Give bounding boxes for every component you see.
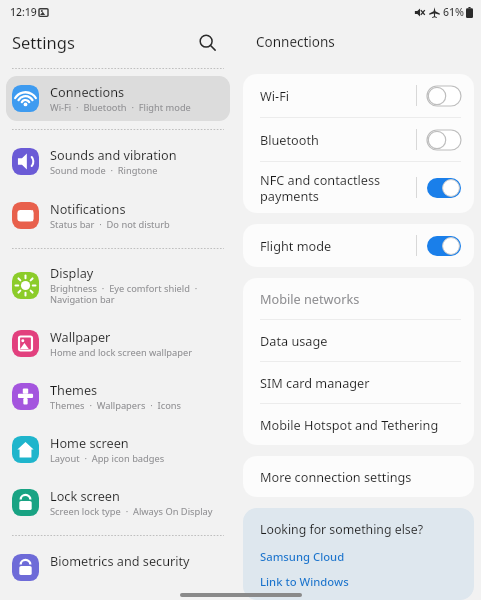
- button[interactable]: Mobile networks: [243, 278, 474, 319]
- staticText: Home screen: [50, 434, 129, 451]
- staticText: Display: [50, 264, 94, 281]
- staticText: NFC and contactless payments: [260, 171, 408, 204]
- staticText: Brightness · Eye comfort shield · Naviga…: [50, 282, 198, 306]
- button[interactable]: Flight mode: [243, 224, 474, 267]
- button[interactable]: Mobile Hotspot and Tethering: [243, 404, 474, 445]
- staticText: Themes: [50, 381, 98, 398]
- staticText: Connections: [50, 83, 125, 100]
- staticText: SIM card manager: [260, 374, 370, 391]
- button[interactable]: Biometrics and security: [6, 545, 230, 590]
- staticText: Home and lock screen wallpaper: [50, 346, 193, 359]
- staticText: Sounds and vibration: [50, 146, 177, 163]
- staticText: Notifications: [50, 200, 126, 217]
- button[interactable]: Search: [192, 27, 222, 57]
- button[interactable]: Notifications: [6, 193, 230, 238]
- button[interactable]: Display: [6, 257, 230, 313]
- staticText: Themes · Wallpapers · Icons: [50, 399, 181, 412]
- staticText: More connection settings: [260, 468, 412, 485]
- staticText: Layout · App icon badges: [50, 452, 165, 465]
- staticText: Status bar · Do not disturb: [50, 218, 170, 231]
- button[interactable]: Samsung Cloud: [260, 549, 345, 564]
- staticText: Bluetooth: [260, 131, 408, 148]
- button[interactable]: SIM card manager: [243, 362, 474, 403]
- button[interactable]: Themes: [6, 374, 230, 419]
- staticText: Samsung Cloud: [260, 549, 345, 564]
- staticText: Settings: [12, 31, 75, 53]
- button[interactable]: Link to Windows: [260, 574, 349, 586]
- staticText: Looking for something else?: [260, 521, 423, 538]
- button[interactable]: Wallpaper: [6, 321, 230, 366]
- staticText: Mobile Hotspot and Tethering: [260, 416, 439, 433]
- staticText: Lock screen: [50, 487, 120, 504]
- button[interactable]: Home screen: [6, 427, 230, 472]
- staticText: 61%: [443, 5, 464, 19]
- staticText: Data usage: [260, 332, 328, 349]
- staticText: Wi-Fi · Bluetooth · Flight mode: [50, 101, 191, 114]
- staticText: Sound mode · Ringtone: [50, 164, 158, 177]
- staticText: Screen lock type · Always On Display: [50, 505, 213, 518]
- button[interactable]: Bluetooth: [243, 118, 474, 161]
- staticText: Wallpaper: [50, 328, 111, 345]
- staticText: Biometrics and security: [50, 552, 190, 569]
- staticText: Wi-Fi: [260, 87, 408, 104]
- button[interactable]: Lock screen: [6, 480, 230, 525]
- staticText: Connections: [256, 33, 335, 51]
- button[interactable]: Connections: [6, 76, 230, 121]
- button[interactable]: Data usage: [243, 320, 474, 361]
- button[interactable]: More connection settings: [243, 456, 474, 497]
- button[interactable]: Sounds and vibration: [6, 139, 230, 184]
- button[interactable]: NFC and contactless payments: [243, 162, 474, 213]
- staticText: Mobile networks: [260, 290, 360, 307]
- staticText: Link to Windows: [260, 574, 349, 586]
- button[interactable]: Wi-Fi: [243, 74, 474, 117]
- staticText: Flight mode: [260, 237, 408, 254]
- staticText: 12:19: [10, 5, 37, 19]
